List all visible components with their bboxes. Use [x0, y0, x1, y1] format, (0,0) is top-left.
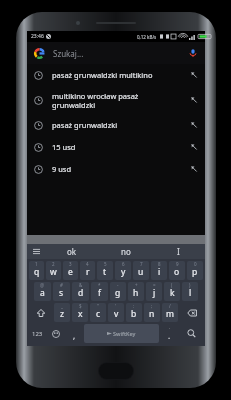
- staticText: +: [135, 282, 138, 288]
- button[interactable]: Shift: [29, 303, 52, 322]
- staticText: a: [40, 287, 45, 299]
- staticText: 0: [194, 261, 197, 267]
- button[interactable]: :: [126, 303, 142, 322]
- button[interactable]: .: [160, 324, 179, 343]
- staticText: pasaż grunwaldzki: [52, 120, 190, 130]
- staticText: no: [121, 246, 131, 257]
- button[interactable]: (: [164, 282, 180, 301]
- button[interactable]: Insert suggestion: [190, 165, 198, 173]
- staticText: m: [166, 308, 174, 320]
- button[interactable]: Voice search: [188, 48, 198, 58]
- button[interactable]: 2: [46, 261, 61, 280]
- staticText: /: [169, 303, 171, 309]
- staticText: Szukaj...: [53, 48, 84, 59]
- button[interactable]: 1: [29, 261, 44, 280]
- button[interactable]: @: [34, 282, 51, 301]
- staticText: ": [97, 303, 99, 309]
- staticText: r: [86, 266, 90, 278]
- button[interactable]: /: [162, 303, 178, 322]
- staticText: e: [68, 266, 73, 278]
- button[interactable]: Space: [84, 324, 159, 343]
- button[interactable]: =: [146, 282, 162, 301]
- button[interactable]: pasaż grunwaldzki multikino: [27, 64, 205, 86]
- staticText: j: [153, 287, 156, 299]
- staticText: n: [149, 308, 155, 320]
- staticText: f: [98, 287, 101, 299]
- staticText: 5: [104, 261, 107, 267]
- button[interactable]: Keyboard menu: [27, 244, 45, 259]
- staticText: 8: [158, 261, 161, 267]
- staticText: 123: [32, 330, 43, 338]
- staticText: 3: [69, 261, 72, 267]
- button[interactable]: &: [72, 282, 89, 301]
- button[interactable]: #: [53, 282, 70, 301]
- button[interactable]: Insert suggestion: [190, 71, 198, 79]
- staticText: o: [174, 266, 180, 278]
- button[interactable]: 3: [63, 261, 78, 280]
- button[interactable]: ): [182, 282, 198, 301]
- staticText: k: [170, 287, 175, 299]
- button[interactable]: _: [54, 303, 70, 322]
- button[interactable]: ok: [45, 244, 99, 259]
- staticText: pasaż grunwaldzki multikino: [52, 70, 190, 80]
- button[interactable]: ,: [65, 324, 83, 343]
- button[interactable]: 4: [80, 261, 95, 280]
- button[interactable]: Backspace: [180, 303, 203, 322]
- staticText: l: [189, 287, 192, 299]
- staticText: -: [117, 282, 119, 288]
- staticText: i: [158, 266, 161, 278]
- button[interactable]: pasaż grunwaldzki: [27, 114, 205, 136]
- button[interactable]: 9 usd: [27, 158, 205, 180]
- button[interactable]: ': [108, 303, 124, 322]
- staticText: ): [189, 282, 191, 288]
- button[interactable]: Home: [98, 362, 134, 380]
- button[interactable]: ;: [144, 303, 160, 322]
- button[interactable]: 0: [187, 261, 203, 280]
- staticText: ;: [151, 303, 153, 309]
- button[interactable]: 7: [133, 261, 149, 280]
- button[interactable]: -: [110, 282, 126, 301]
- staticText: 23:46: [31, 33, 44, 40]
- button[interactable]: 8: [151, 261, 167, 280]
- staticText: c: [96, 308, 101, 320]
- staticText: $: [79, 303, 82, 309]
- button[interactable]: ": [90, 303, 106, 322]
- button[interactable]: 15 usd: [27, 136, 205, 158]
- button[interactable]: Insert suggestion: [190, 121, 198, 129]
- button[interactable]: 123: [28, 324, 47, 343]
- staticText: p: [192, 266, 198, 278]
- button[interactable]: $: [72, 303, 88, 322]
- button[interactable]: Insert suggestion: [190, 96, 198, 104]
- staticText: w: [50, 266, 57, 278]
- staticText: h: [133, 287, 139, 299]
- staticText: #: [60, 282, 63, 288]
- button[interactable]: Emoji: [47, 324, 65, 343]
- staticText: SwiftKey: [113, 330, 136, 337]
- button[interactable]: Insert suggestion: [190, 143, 198, 151]
- button[interactable]: I: [152, 244, 205, 259]
- button[interactable]: no: [99, 244, 152, 259]
- staticText: =: [153, 282, 156, 288]
- staticText: 15 usd: [52, 142, 190, 152]
- staticText: v: [114, 308, 119, 320]
- staticText: 7: [140, 261, 143, 267]
- staticText: .: [169, 324, 171, 331]
- button[interactable]: *: [91, 282, 108, 301]
- staticText: s: [59, 287, 64, 299]
- staticText: 9: [176, 261, 179, 267]
- button[interactable]: +: [128, 282, 144, 301]
- button[interactable]: 9: [169, 261, 185, 280]
- staticText: :: [133, 303, 135, 309]
- staticText: ': [115, 303, 117, 309]
- button[interactable]: 6: [115, 261, 131, 280]
- button[interactable]: 5: [97, 261, 113, 280]
- staticText: 2: [52, 261, 55, 267]
- staticText: y: [121, 266, 126, 278]
- staticText: @: [40, 282, 45, 288]
- button[interactable]: multikino wrocław pasaż grunwaldzki: [27, 86, 205, 114]
- button[interactable]: Search: [179, 324, 204, 343]
- button[interactable]: Szukaj...: [27, 42, 205, 64]
- staticText: x: [78, 308, 83, 320]
- staticText: g: [115, 287, 121, 299]
- staticText: 1: [35, 261, 38, 267]
